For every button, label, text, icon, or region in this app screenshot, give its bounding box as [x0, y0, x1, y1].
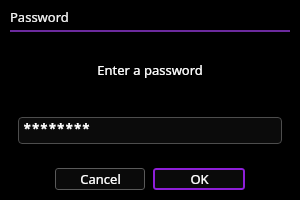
button[interactable]: Cancel — [55, 168, 145, 190]
staticText: Enter a password — [97, 61, 203, 79]
staticText: OK — [190, 170, 209, 188]
staticText: Cancel — [80, 170, 121, 188]
staticText: ******** — [23, 119, 91, 138]
button[interactable]: OK — [153, 168, 245, 190]
staticText: Password — [10, 8, 69, 26]
button[interactable]: Password input field — [18, 117, 282, 144]
